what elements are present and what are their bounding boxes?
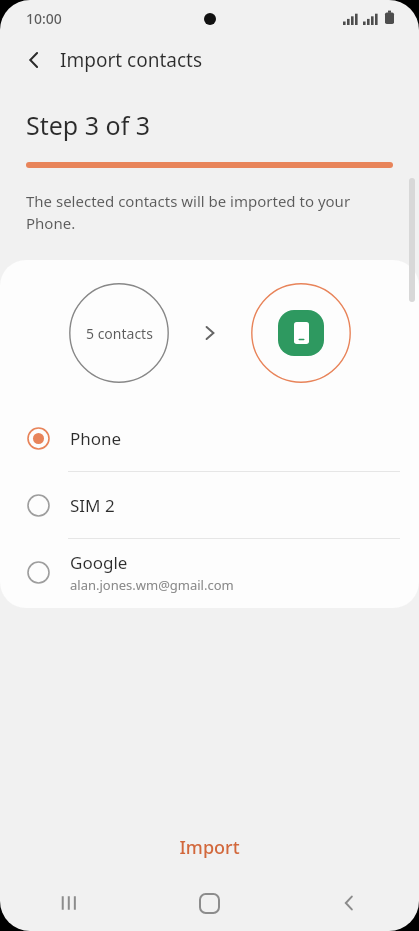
button[interactable]: SIM 2 [0, 472, 419, 538]
button[interactable]: Phone [0, 405, 419, 471]
staticText: 5 contacts [86, 324, 153, 343]
button[interactable]: Import [0, 819, 419, 875]
staticText: Phone [70, 427, 122, 450]
staticText: Google [70, 551, 128, 574]
button[interactable]: Google [0, 539, 419, 605]
staticText: alan.jones.wm@gmail.com [70, 576, 234, 594]
staticText: Step 3 of 3 [26, 108, 151, 142]
button[interactable]: Back [14, 40, 54, 80]
staticText: 10:00 [26, 9, 62, 28]
staticText: SIM 2 [70, 494, 115, 517]
button[interactable]: Recent apps [0, 875, 139, 931]
button[interactable]: Home [139, 875, 279, 931]
button[interactable]: Back [279, 875, 419, 931]
staticText: Import contacts [60, 47, 202, 73]
staticText: Import [179, 835, 240, 860]
staticText: The selected contacts will be imported t… [26, 191, 389, 234]
